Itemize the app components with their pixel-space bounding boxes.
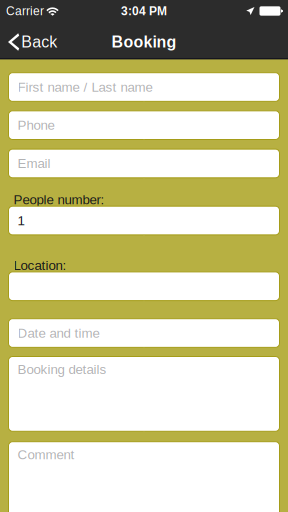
staticText: Date and time (17, 326, 99, 340)
button[interactable]: Date and time (8, 319, 279, 347)
button[interactable]: Booking details (8, 356, 279, 431)
staticText: People number: (13, 192, 104, 207)
staticText: 1 (17, 213, 24, 228)
button[interactable]: Comment (8, 442, 279, 512)
staticText: Booking (111, 33, 176, 51)
staticText: Phone (17, 118, 54, 133)
button[interactable]: Back (0, 24, 65, 60)
button[interactable] (8, 272, 279, 301)
button[interactable]: First name / Last name (8, 73, 279, 101)
staticText: Comment (17, 447, 74, 462)
button[interactable]: Phone (8, 111, 279, 139)
staticText: Location: (13, 258, 66, 273)
staticText: Booking details (17, 362, 106, 377)
staticText: Email (17, 156, 50, 171)
button[interactable]: 1 (8, 206, 279, 235)
staticText: Carrier (6, 4, 44, 18)
staticText: Back (21, 33, 57, 51)
button[interactable]: Email (8, 149, 279, 178)
staticText: First name / Last name (17, 80, 152, 94)
staticText: 3:04 PM (121, 4, 167, 18)
